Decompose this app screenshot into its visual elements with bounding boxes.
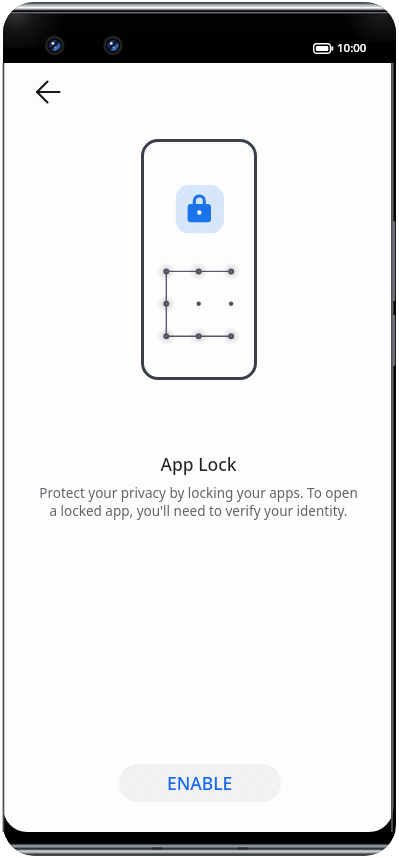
staticText: 10:00 [337, 40, 367, 56]
staticText: Protect your privacy by locking your app… [5, 484, 392, 520]
button[interactable]: ENABLE [119, 764, 281, 802]
staticText: App Lock [5, 452, 392, 476]
button[interactable]: Back [26, 70, 70, 114]
staticText: ENABLE [167, 771, 233, 795]
